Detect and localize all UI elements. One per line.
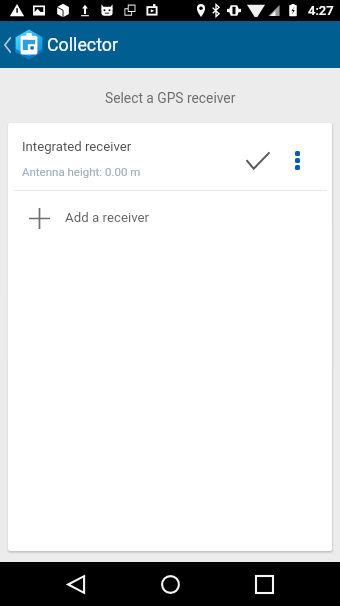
button[interactable]: Integrated receiver — [8, 123, 332, 190]
button[interactable]: Add a receiver — [8, 190, 332, 246]
button[interactable]: Collector — [15, 21, 126, 68]
staticText: 4:27 — [308, 3, 334, 18]
staticText: Add a receiver — [65, 210, 150, 226]
button[interactable]: Home — [141, 562, 199, 606]
staticText: Antenna height: 0.00 m — [22, 165, 141, 178]
button[interactable]: Recent apps — [235, 562, 293, 606]
button[interactable]: Back — [0, 21, 15, 68]
staticText: Integrated receiver — [22, 139, 132, 154]
other: Selected receiver — [236, 138, 280, 182]
button[interactable]: More options — [282, 138, 312, 182]
button[interactable]: Back — [47, 562, 105, 606]
staticText: Select a GPS receiver — [105, 90, 236, 106]
staticText: Collector — [47, 34, 118, 55]
